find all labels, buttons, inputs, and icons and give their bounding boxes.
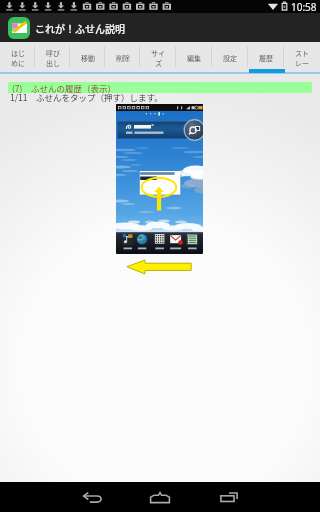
button[interactable]: Recent apps [209, 484, 249, 510]
staticText: レー [295, 58, 309, 68]
button[interactable]: スト [284, 42, 320, 71]
button[interactable]: 編集 [176, 42, 212, 71]
staticText: はじ [11, 48, 25, 58]
staticText: サイ [151, 48, 165, 58]
staticText: 1/11 ふせんをタップ（押す）します。 [10, 91, 163, 103]
staticText: 呼び [46, 48, 60, 58]
staticText: スト [295, 48, 309, 58]
staticText: ズ [155, 58, 162, 68]
staticText: これが！ふせん説明 [35, 21, 125, 35]
button[interactable]: (7) ふせんの履歴（表示） [8, 82, 312, 93]
button[interactable]: 設定 [212, 42, 248, 71]
staticText: 10:58 [291, 0, 317, 13]
staticText: 設定 [223, 53, 237, 63]
staticText: (7) ふせんの履歴（表示） [12, 82, 116, 93]
button[interactable]: 移動 [70, 42, 105, 71]
button[interactable]: 削除 [105, 42, 140, 71]
button[interactable]: Back [72, 484, 112, 510]
button[interactable]: サイ [140, 42, 176, 71]
staticText: 履歴 [259, 53, 273, 63]
button[interactable]: はじ [0, 42, 35, 71]
staticText: 移動 [81, 53, 95, 63]
staticText: めに [11, 58, 25, 68]
button[interactable]: Home [140, 484, 180, 510]
button[interactable]: これが！ふせん説明 [0, 13, 320, 42]
staticText: 削除 [116, 53, 130, 63]
button[interactable]: 履歴 [248, 42, 284, 71]
staticText: 編集 [187, 53, 201, 63]
staticText: 出し [46, 58, 60, 68]
button[interactable]: 呼び [35, 42, 70, 71]
